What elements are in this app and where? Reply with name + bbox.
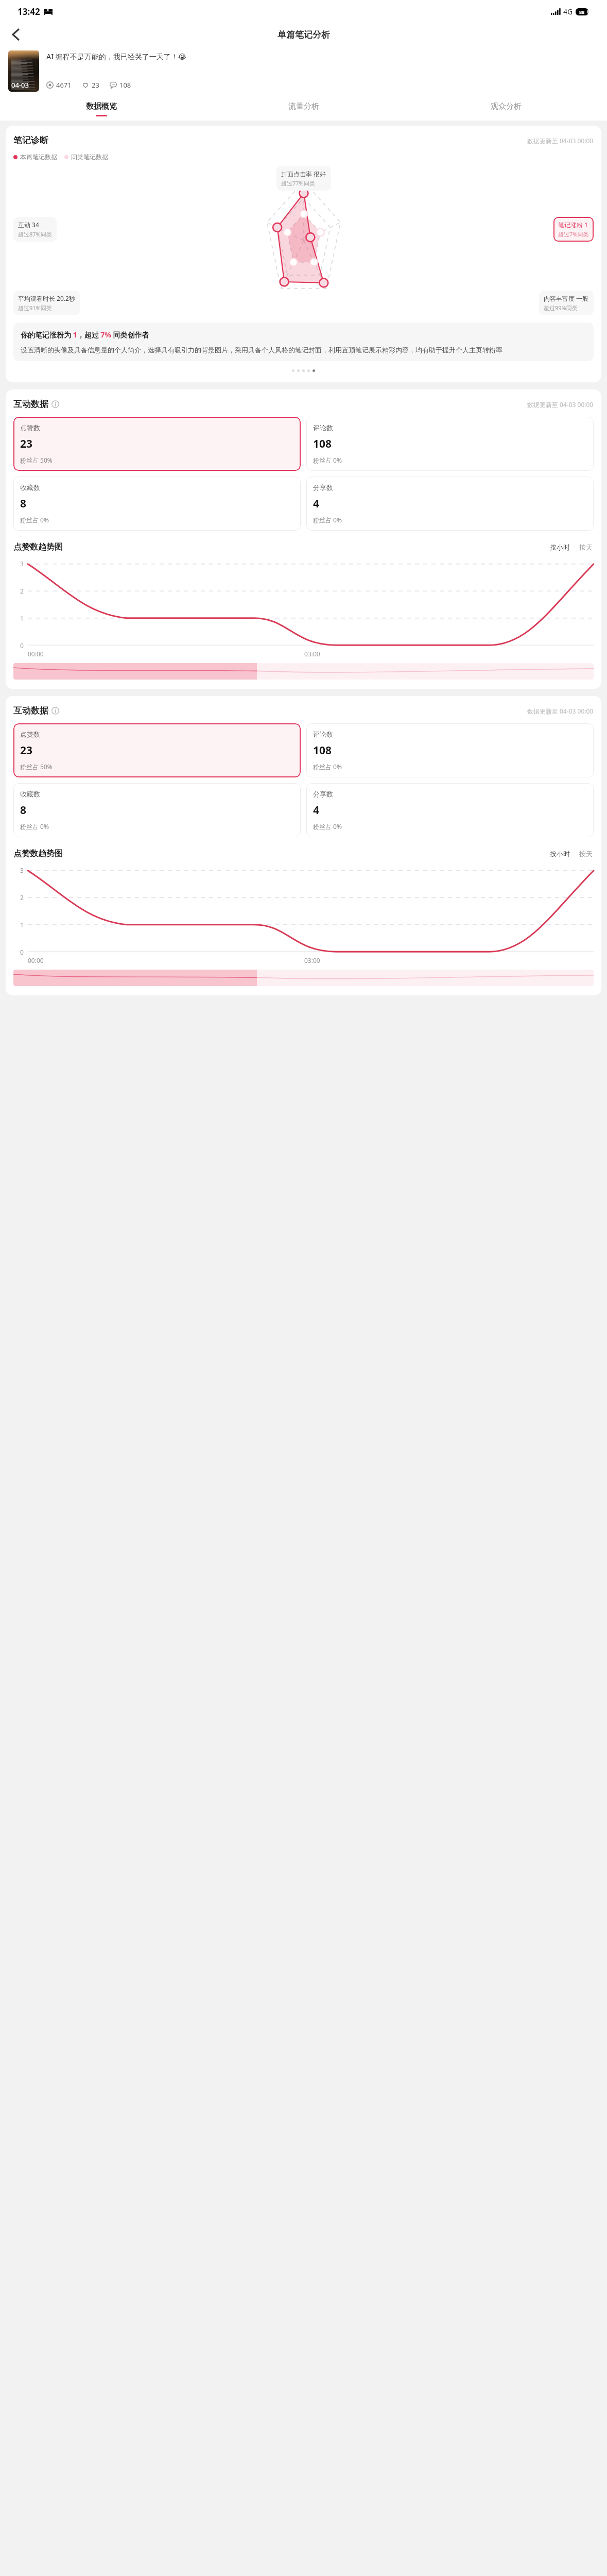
button[interactable]: 观众分析 (405, 97, 607, 121)
staticText: 按小时 (550, 850, 570, 858)
staticText: 超过77%同类 (281, 179, 315, 187)
staticText: 4671 (56, 80, 72, 90)
button[interactable]: 按小时 (549, 850, 571, 858)
staticText: 3 (20, 866, 24, 874)
staticText: 23 (20, 436, 33, 451)
button[interactable]: 按小时 (549, 543, 571, 551)
staticText: 1 (20, 921, 24, 929)
button[interactable]: 内容丰富度 一般 (539, 291, 594, 315)
staticText: 108 (313, 743, 332, 758)
staticText: 评论数 (313, 730, 333, 738)
staticText: 互动数据 (13, 399, 48, 410)
staticText: 粉丝占 0% (313, 456, 342, 464)
button[interactable]: 分享数 (306, 783, 594, 837)
button[interactable]: Back (4, 23, 27, 46)
staticText: 超过7%同类 (558, 230, 589, 238)
button[interactable] (257, 663, 594, 680)
staticText: 超过87%同类 (18, 230, 52, 238)
button[interactable] (13, 970, 257, 986)
staticText: 23 (20, 743, 33, 758)
button[interactable]: 平均观看时长 20.2秒 (13, 291, 80, 315)
button[interactable] (257, 970, 594, 986)
staticText: 粉丝占 0% (313, 762, 342, 771)
staticText: 收藏数 (20, 483, 40, 492)
staticText: 数据更新至 04-03 00:00 (527, 137, 594, 145)
button[interactable]: 点赞数 (13, 417, 301, 471)
staticText: 内容丰富度 一般 (544, 294, 589, 302)
staticText: 观众分析 (491, 101, 522, 111)
button[interactable]: 收藏数 (13, 477, 301, 531)
staticText: 00:00 (28, 956, 44, 964)
staticText: 按天 (579, 543, 593, 551)
staticText: 分享数 (313, 790, 333, 798)
button[interactable]: 评论数 (306, 417, 594, 471)
staticText: 笔记涨粉 1 (558, 221, 588, 229)
staticText: 按天 (579, 850, 593, 858)
button[interactable]: 流量分析 (202, 97, 405, 121)
staticText: 数据更新至 04-03 00:00 (527, 400, 594, 409)
staticText: 108 (313, 436, 332, 451)
button[interactable]: 04-03 (8, 50, 599, 92)
staticText: 本篇笔记数据 (20, 153, 57, 161)
staticText: 评论数 (313, 423, 333, 432)
staticText: 单篇笔记分析 (278, 29, 330, 40)
button[interactable]: 数据概览 (0, 97, 202, 121)
button[interactable]: 按天 (578, 850, 594, 858)
staticText: 封面点击率 很好 (281, 170, 326, 178)
staticText: 数据更新至 04-03 00:00 (527, 707, 594, 715)
staticText: 超过91%同类 (18, 304, 52, 312)
button[interactable]: 点赞数 (13, 723, 301, 777)
staticText: 互动 34 (18, 221, 39, 229)
staticText: 108 (119, 80, 131, 90)
staticText: 粉丝占 0% (313, 516, 342, 524)
staticText: 按小时 (550, 543, 570, 551)
staticText: 点赞数 (20, 423, 40, 432)
staticText: 04-03 (11, 80, 29, 90)
staticText: 1 (20, 614, 24, 622)
staticText: 数据概览 (86, 101, 117, 111)
staticText: 你的笔记涨粉为 1，超过 7% 同类创作者 (21, 330, 149, 340)
staticText: 点赞数趋势图 (13, 849, 63, 859)
staticText: 平均观看时长 20.2秒 (18, 294, 75, 302)
staticText: 收藏数 (20, 790, 40, 798)
button[interactable]: 封面点击率 很好 (276, 166, 331, 191)
staticText: 23 (92, 80, 99, 90)
button[interactable]: 按天 (578, 543, 594, 551)
staticText: 0 (20, 948, 24, 956)
button[interactable]: Info (51, 707, 59, 715)
staticText: 4 (313, 803, 320, 818)
staticText: 流量分析 (288, 101, 319, 111)
staticText: 粉丝占 50% (20, 762, 53, 771)
staticText: 00:00 (28, 650, 44, 658)
button[interactable]: 互动 34 (13, 217, 57, 242)
staticText: 88 (579, 9, 585, 15)
staticText: 互动数据 (13, 705, 48, 716)
button[interactable]: 分享数 (306, 477, 594, 531)
button[interactable]: 评论数 (306, 723, 594, 777)
staticText: 粉丝占 0% (313, 822, 342, 831)
staticText: 8 (20, 803, 27, 818)
button[interactable] (13, 663, 257, 680)
staticText: 粉丝占 0% (20, 822, 49, 831)
staticText: 设置清晰的头像及具备信息量的个人简介，选择具有吸引力的背景图片，采用具备个人风格… (21, 346, 502, 354)
staticText: 笔记诊断 (13, 135, 48, 146)
staticText: 03:00 (304, 650, 320, 658)
staticText: 03:00 (304, 956, 320, 964)
staticText: 8 (20, 496, 27, 511)
button[interactable]: 收藏数 (13, 783, 301, 837)
staticText: 粉丝占 0% (20, 516, 49, 524)
staticText: 4 (313, 496, 320, 511)
staticText: 粉丝占 50% (20, 456, 53, 464)
button[interactable]: Info (51, 400, 59, 408)
button[interactable]: 笔记涨粉 1 (553, 217, 594, 242)
staticText: 13:42 (18, 6, 40, 18)
staticText: 4G (563, 7, 573, 16)
staticText: 分享数 (313, 483, 333, 492)
staticText: 2 (20, 587, 24, 595)
staticText: 2 (20, 893, 24, 902)
staticText: 点赞数趋势图 (13, 542, 63, 552)
staticText: 同类笔记数据 (71, 153, 108, 161)
staticText: 超过99%同类 (544, 304, 578, 312)
staticText: AI 编程不是万能的，我已经哭了一天了！😭 (46, 52, 187, 61)
staticText: 3 (20, 560, 24, 568)
